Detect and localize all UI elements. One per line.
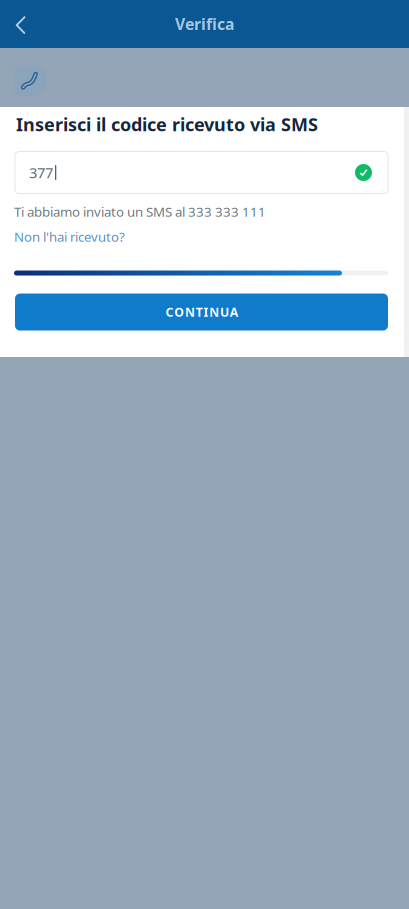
staticText: Ti abbiamo inviato un SMS al 333 333 111 bbox=[14, 202, 266, 221]
staticText: Inserisci il codice ricevuto via SMS bbox=[16, 112, 318, 136]
staticText: 377 bbox=[29, 162, 53, 182]
staticText: Non l'hai ricevuto? bbox=[14, 228, 125, 246]
staticText: Verifica bbox=[175, 13, 234, 35]
staticText: CONTINUA bbox=[165, 304, 238, 320]
button[interactable]: Non l'hai ricevuto? bbox=[0, 221, 131, 246]
button[interactable]: CONTINUA bbox=[15, 294, 388, 331]
button[interactable]: Back bbox=[0, 0, 46, 48]
